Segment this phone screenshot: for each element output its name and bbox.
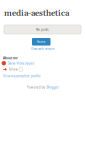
staticText: View my complete profile [3, 74, 41, 78]
button[interactable]: View web version [30, 46, 56, 51]
staticText: Powered by [26, 85, 45, 89]
button[interactable]: Home [32, 38, 50, 45]
staticText: media-aesthetica [4, 8, 69, 19]
button[interactable]: Follow [3, 68, 23, 71]
staticText: Dana Viola Jayas [7, 61, 34, 65]
button[interactable]: View my complete profile [2, 73, 41, 78]
staticText: About me [3, 56, 18, 60]
staticText: Blogger [46, 85, 58, 89]
staticText: View web version [31, 47, 55, 51]
button[interactable]: Dana Viola Jayas [2, 61, 34, 65]
button[interactable]: Blogger [46, 85, 58, 89]
staticText: Home [37, 40, 46, 44]
staticText: Follow [9, 68, 18, 71]
staticText: No posts. [36, 27, 49, 31]
